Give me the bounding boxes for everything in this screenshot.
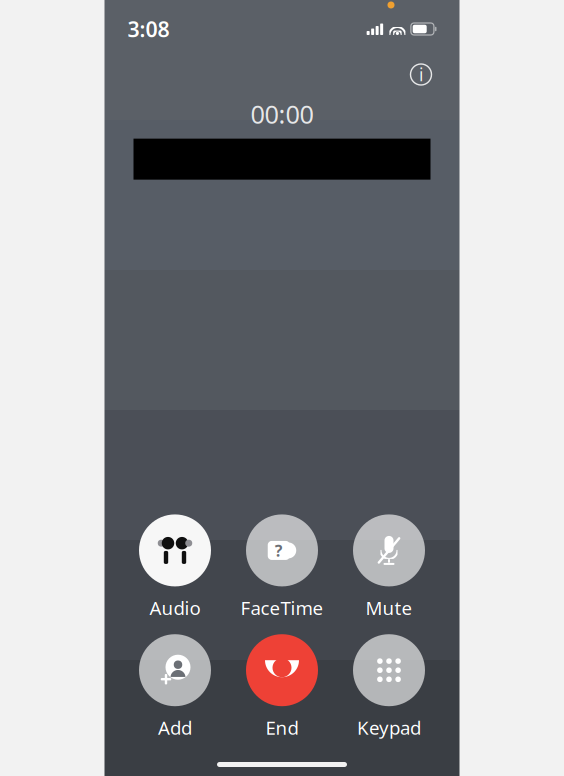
button[interactable]: Call details (404, 58, 437, 91)
button[interactable]: Add (121, 634, 228, 740)
staticText: End (265, 715, 298, 740)
button[interactable]: Audio (121, 514, 228, 620)
button[interactable]: Mute (335, 514, 442, 620)
button[interactable]: ? (228, 514, 335, 620)
staticText: Keypad (357, 715, 421, 740)
staticText: i (419, 63, 423, 86)
staticText: Audio (149, 595, 200, 620)
staticText: ? (275, 540, 283, 561)
staticText: 00:00 (250, 97, 313, 131)
staticText: Mute (365, 595, 412, 620)
staticText: 3:08 (127, 15, 169, 43)
staticText: Add (158, 715, 192, 740)
button[interactable]: End (228, 634, 335, 740)
staticText: FaceTime (240, 595, 323, 620)
button[interactable]: Keypad (335, 634, 442, 740)
